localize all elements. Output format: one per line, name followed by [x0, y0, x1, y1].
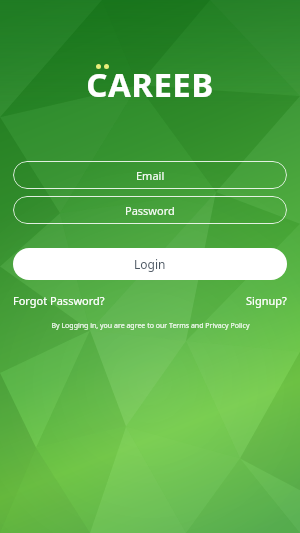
staticText: Email: [136, 168, 165, 183]
button[interactable]: Signup?: [246, 293, 287, 308]
button[interactable]: Forgot Password?: [13, 293, 105, 308]
button[interactable]: By Logging in, you are agree to our Term…: [13, 321, 287, 331]
button[interactable]: Login: [13, 248, 287, 280]
staticText: CAREEB: [86, 62, 214, 107]
staticText: By Logging in, you are agree to our Term…: [51, 321, 250, 331]
staticText: Signup?: [246, 293, 287, 308]
staticText: Login: [134, 256, 166, 272]
button[interactable]: Password: [13, 196, 287, 224]
button[interactable]: Email: [13, 161, 287, 189]
staticText: Password: [125, 203, 175, 218]
staticText: Forgot Password?: [13, 293, 105, 308]
